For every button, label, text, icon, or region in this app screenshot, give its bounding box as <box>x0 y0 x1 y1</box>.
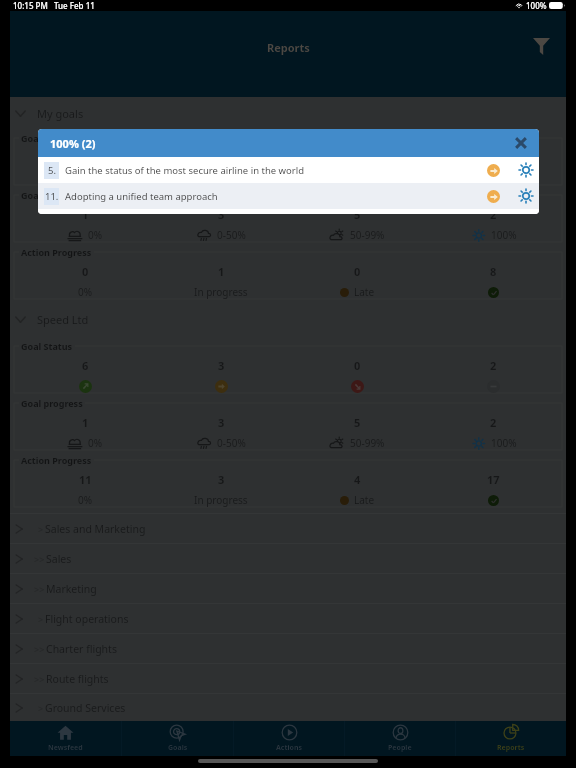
staticText: 11. <box>45 190 59 203</box>
staticText: 3 <box>218 358 225 373</box>
staticText: Speed Ltd <box>37 312 89 327</box>
button[interactable]: 11. <box>38 183 539 209</box>
staticText: 2 <box>490 358 497 373</box>
staticText: Goals <box>168 743 188 753</box>
button[interactable]: Actions <box>234 721 344 756</box>
staticText: 3 <box>218 415 225 430</box>
staticText: Goal progress <box>21 189 83 201</box>
staticText: 5 <box>354 207 361 222</box>
staticText: 6 <box>82 358 89 373</box>
staticText: 100% <box>491 436 517 450</box>
staticText: 50-99% <box>350 228 385 242</box>
staticText: 3 <box>218 472 225 487</box>
staticText: 3 <box>218 207 225 222</box>
button[interactable]: Newsfeed <box>10 721 121 756</box>
staticText: 0 <box>354 358 361 373</box>
staticText: 0% <box>88 228 103 242</box>
staticText: Gain the status of the most secure airli… <box>65 164 305 177</box>
staticText: 1 <box>82 415 89 430</box>
staticText: 0% <box>78 285 93 299</box>
staticText: Reports <box>497 743 525 753</box>
staticText: 2 <box>490 207 497 222</box>
button[interactable]: 5. <box>38 157 539 183</box>
staticText: 0 <box>354 264 361 279</box>
button[interactable]: Close <box>510 132 532 154</box>
staticText: Adopting a unified team approach <box>65 190 218 203</box>
staticText: 10:15 PM <box>13 0 48 11</box>
staticText: Charter flights <box>46 642 117 656</box>
staticText: 6 <box>82 150 89 165</box>
button[interactable]: Goals <box>122 721 233 756</box>
staticText: 0 <box>354 150 361 165</box>
staticText: In progress <box>194 493 248 507</box>
staticText: Sales and Marketing <box>45 522 146 536</box>
staticText: Actions <box>276 743 303 753</box>
staticText: Reports <box>267 40 310 55</box>
staticText: Goal progress <box>21 397 83 409</box>
staticText: 5 <box>354 415 361 430</box>
staticText: Flight operations <box>45 612 129 626</box>
staticText: 0 <box>82 264 89 279</box>
staticText: 50-99% <box>350 436 385 450</box>
button[interactable]: Reports <box>456 721 566 756</box>
staticText: 2 <box>490 150 497 165</box>
staticText: Action Progress <box>21 246 92 258</box>
staticText: 11 <box>79 472 92 487</box>
staticText: Goal Status <box>21 132 73 144</box>
staticText: 1 <box>82 207 89 222</box>
staticText: In progress <box>194 285 248 299</box>
staticText: 2 <box>490 415 497 430</box>
staticText: 0% <box>78 493 93 507</box>
staticText: 4 <box>354 472 361 487</box>
button[interactable]: Progress 100 percent <box>517 161 535 179</box>
staticText: 0% <box>88 436 103 450</box>
staticText: My goals <box>37 106 84 121</box>
button[interactable]: My goals <box>10 97 566 130</box>
staticText: Ground Services <box>45 701 126 715</box>
staticText: 8 <box>490 264 497 279</box>
staticText: Tue Feb 11 <box>54 0 95 11</box>
staticText: People <box>388 743 412 753</box>
staticText: 1 <box>218 264 225 279</box>
staticText: 0-50% <box>217 228 246 242</box>
staticText: Marketing <box>46 582 97 596</box>
button[interactable]: Open goal <box>487 190 500 203</box>
staticText: 5. <box>48 164 56 177</box>
staticText: 100% (2) <box>50 136 96 151</box>
staticText: Goal Status <box>21 340 73 352</box>
button[interactable]: Open goal <box>487 164 500 177</box>
staticText: 3 <box>218 150 225 165</box>
staticText: Late <box>354 493 375 507</box>
staticText: Late <box>354 285 375 299</box>
staticText: 100% <box>526 0 547 11</box>
staticText: Route flights <box>46 672 109 686</box>
staticText: Newsfeed <box>48 743 83 753</box>
staticText: Action Progress <box>21 454 92 466</box>
button[interactable]: Progress 100 percent <box>517 187 535 205</box>
button[interactable]: People <box>345 721 455 756</box>
staticText: 0-50% <box>217 436 246 450</box>
staticText: Sales <box>46 552 72 566</box>
staticText: 100% <box>491 228 517 242</box>
button[interactable]: Filter <box>525 30 557 62</box>
staticText: 17 <box>487 472 500 487</box>
